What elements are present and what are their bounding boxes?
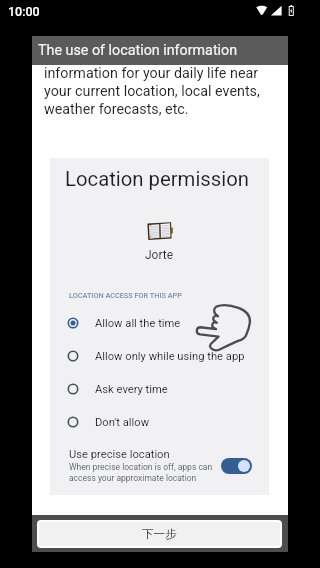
staticText: Ask every time [95, 383, 168, 396]
other: Jorte app icon [147, 222, 173, 240]
button[interactable]: Allow all the time [50, 307, 269, 339]
staticText: Allow all the time [95, 317, 181, 330]
staticText: 下一步 [142, 527, 177, 541]
button[interactable]: Use precise location [50, 448, 269, 483]
button[interactable]: The use of location information [32, 36, 288, 65]
staticText: 10:00 [8, 4, 40, 19]
staticText: When precise location is off, apps can a… [69, 462, 213, 483]
staticText: Jorte [145, 248, 174, 262]
staticText: Use precise location [69, 448, 170, 461]
button[interactable]: Don't allow [50, 406, 269, 438]
staticText: LOCATION ACCESS FOR THIS APP [69, 291, 182, 300]
staticText: The use of location information [38, 42, 238, 59]
other: Status icons [256, 5, 296, 17]
button[interactable]: Allow only while using the app [50, 340, 269, 372]
staticText: information for your daily life near you… [44, 65, 260, 118]
button[interactable]: Ask every time [50, 373, 269, 405]
other: Pointer [197, 303, 253, 351]
staticText: Allow only while using the app [95, 350, 245, 363]
staticText: Don't allow [95, 416, 150, 429]
staticText: Location permission [65, 167, 250, 191]
button[interactable]: 下一步 [39, 522, 280, 546]
